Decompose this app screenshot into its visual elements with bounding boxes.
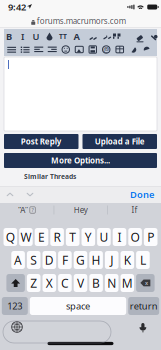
staticText: More Options... [51,155,110,166]
staticText: J [110,252,113,268]
button[interactable]: x [136,274,155,292]
button[interactable]: Done [130,186,161,203]
staticText: Done [130,188,154,201]
button[interactable]: space [30,297,126,315]
button[interactable]: P [144,228,157,246]
staticText: D [45,252,54,268]
button[interactable]: Format [70,30,83,42]
staticText: K [124,252,131,268]
button[interactable]: E [35,228,48,246]
staticText: If [131,205,137,215]
button[interactable]: Format [113,43,126,55]
staticText: O [131,229,140,245]
button[interactable] [6,274,25,292]
staticText: H [92,252,101,268]
staticText: C [61,275,69,291]
staticText: forums.macrumors.com [37,16,126,26]
staticText: R [54,229,61,245]
button[interactable]: Format [2,30,16,42]
button[interactable]: V [74,274,87,292]
staticText: T [69,229,76,245]
staticText: X [46,275,53,291]
button[interactable]: Q [3,228,17,246]
staticText: U [99,229,108,245]
button[interactable]: Format [140,43,153,55]
button[interactable]: Format [45,43,59,55]
button[interactable]: Previous field [0,186,20,203]
button[interactable]: Format [56,30,70,42]
button[interactable]: Format [29,30,43,42]
button[interactable]: Upload a File [82,134,157,149]
staticText: Y [85,229,92,245]
button[interactable]: Format [18,43,32,55]
button[interactable]: Format [16,30,29,42]
staticText: B [92,275,100,291]
button[interactable]: 123 [2,297,28,315]
button[interactable]: More Options... [4,153,157,168]
staticText: S [30,252,37,268]
button[interactable]: Dictation [131,319,155,335]
button[interactable]: Format [5,43,18,55]
button[interactable]: G [74,251,87,269]
staticText: “A” [18,205,28,215]
button[interactable]: Z [27,274,40,292]
button[interactable]: Hey [54,203,107,217]
button[interactable]: I [113,228,126,246]
button[interactable]: O [128,228,142,246]
button[interactable]: Next keyboard [5,319,29,335]
button[interactable]: return [128,297,159,315]
button[interactable]: S [27,251,40,269]
button[interactable]: L [136,251,150,269]
button[interactable]: N [105,274,118,292]
button[interactable]: A [11,251,25,269]
button[interactable]: Format [110,30,124,42]
staticText: 123 [7,300,22,312]
staticText: Z [30,275,37,291]
button[interactable]: “A” [0,203,54,217]
staticText: ? [32,206,34,214]
button[interactable]: Format [126,43,140,55]
staticText: M [122,275,133,291]
staticText: W [20,229,31,245]
button[interactable]: Format [97,30,110,42]
staticText: A [73,30,79,43]
staticText: E [38,229,45,245]
button[interactable]: T [66,228,79,246]
button[interactable]: Format [99,43,113,55]
staticText: G [76,252,85,268]
staticText: F [62,252,68,268]
staticText: I [21,30,24,43]
button[interactable]: Next field [20,186,40,203]
button[interactable]: If [108,203,161,217]
staticText: I [117,229,121,245]
button[interactable]: Format [72,43,86,55]
button[interactable]: M [120,274,134,292]
button[interactable]: C [58,274,72,292]
staticText: Q [6,229,15,245]
button[interactable]: Format [32,43,45,55]
button[interactable]: Post Reply [4,134,78,149]
button[interactable]: B [89,274,103,292]
button[interactable]: Format [86,43,99,55]
staticText: V [77,275,84,291]
button[interactable]: W [19,228,33,246]
staticText: B [6,30,12,43]
button[interactable]: J [105,251,118,269]
button[interactable]: R [50,228,64,246]
staticText: P [147,229,154,245]
button[interactable]: Y [81,228,95,246]
button[interactable]: Format [83,30,97,42]
button[interactable]: D [42,251,56,269]
button[interactable]: K [120,251,134,269]
staticText: return [130,300,158,312]
button[interactable]: F [58,251,72,269]
button[interactable]: Format [59,43,72,55]
staticText: U [32,30,39,43]
button[interactable]: Format [133,30,146,42]
button[interactable]: H [89,251,103,269]
button[interactable]: X [42,274,56,292]
button[interactable]: Format [43,30,56,42]
staticText: N [107,275,116,291]
button[interactable]: Format [146,30,160,42]
button[interactable]: U [97,228,111,246]
